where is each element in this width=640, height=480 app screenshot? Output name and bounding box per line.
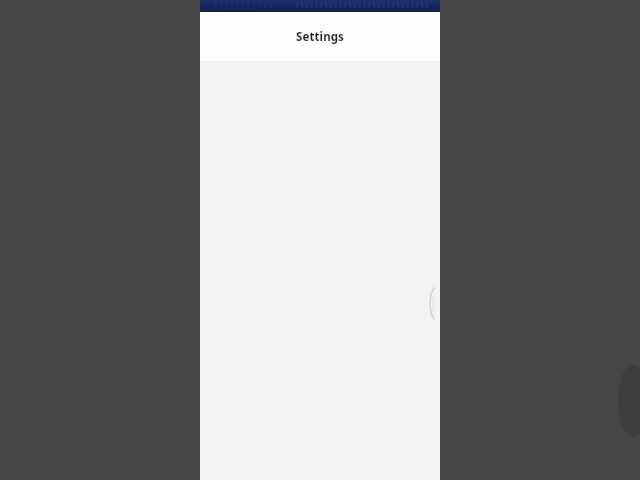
staticText: Settings	[236, 29, 404, 45]
other: Scroll indicator	[428, 0, 440, 480]
